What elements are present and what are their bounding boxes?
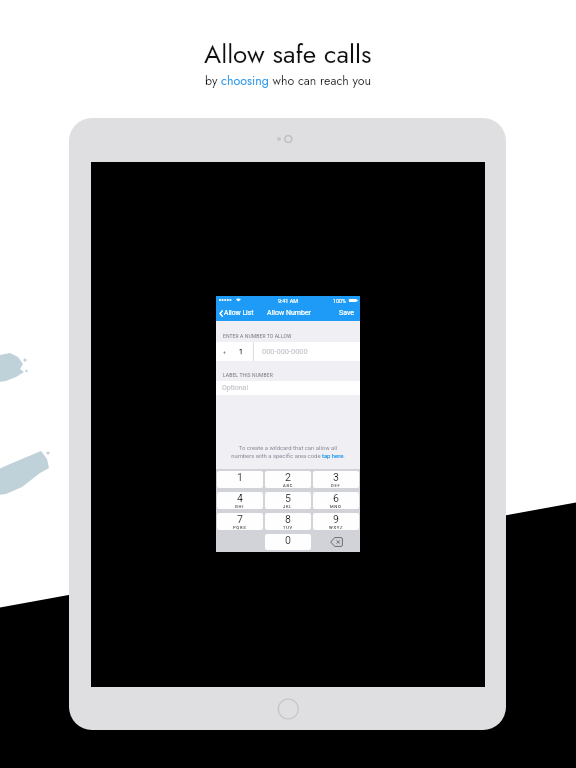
staticText: DEF xyxy=(331,483,341,488)
button[interactable]: + xyxy=(216,342,360,361)
button[interactable]: 5 xyxy=(265,492,311,509)
button[interactable]: 7 xyxy=(217,513,263,530)
staticText: 1 xyxy=(239,348,243,356)
staticText: JKL xyxy=(283,504,293,509)
button[interactable]: 9 xyxy=(313,513,359,530)
button[interactable]: Delete xyxy=(312,532,360,552)
staticText: MNO xyxy=(330,504,342,509)
staticText: 6 xyxy=(333,492,339,504)
staticText: 100% xyxy=(333,298,347,304)
button[interactable]: 2 xyxy=(265,471,311,488)
staticText: 9:41 AM xyxy=(278,298,298,304)
button[interactable]: 1 xyxy=(217,471,263,488)
staticText: GHI xyxy=(235,504,245,509)
staticText: 5 xyxy=(285,492,291,504)
staticText: 0 xyxy=(285,534,291,546)
staticText: Allow Number xyxy=(267,309,311,317)
staticText: 3 xyxy=(333,471,339,483)
button[interactable]: 3 xyxy=(313,471,359,488)
button[interactable]: Optional xyxy=(216,381,360,395)
staticText: ABC xyxy=(283,483,294,488)
staticText: Allow safe calls xyxy=(204,35,372,73)
button[interactable]: 0 xyxy=(265,534,311,550)
button[interactable]: Save xyxy=(334,307,360,319)
staticText: Optional xyxy=(222,384,249,392)
staticText: 2 xyxy=(285,471,291,483)
staticText: 4 xyxy=(237,492,243,504)
staticText: LABEL THIS NUMBER xyxy=(223,372,273,378)
staticText: 7 xyxy=(237,513,243,525)
staticText: To create a wildcard that can allow all … xyxy=(222,445,354,459)
staticText: ENTER A NUMBER TO ALLOW xyxy=(223,333,292,339)
button[interactable]: Allow List xyxy=(216,307,256,319)
staticText: PQRS xyxy=(233,525,247,530)
button[interactable]: 6 xyxy=(313,492,359,509)
staticText: by choosing who can reach you xyxy=(205,72,372,90)
staticText: 1 xyxy=(237,471,243,483)
staticText: Allow List xyxy=(224,309,254,317)
button[interactable]: 4 xyxy=(217,492,263,509)
staticText: Save xyxy=(339,309,354,317)
staticText: 000-000-0000 xyxy=(262,347,308,356)
staticText: 8 xyxy=(285,513,291,525)
staticText: WXYZ xyxy=(329,525,344,530)
staticText: 9 xyxy=(333,513,339,525)
button[interactable]: 8 xyxy=(265,513,311,530)
staticText: TUV xyxy=(283,525,293,530)
staticText: + xyxy=(223,349,227,355)
